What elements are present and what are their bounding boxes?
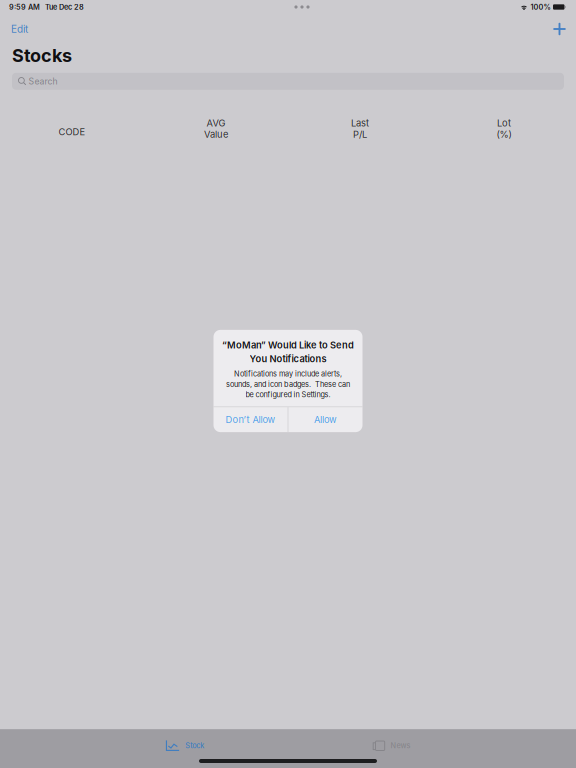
staticText: Notifications may include alerts, [234,369,342,378]
staticText: P/L [353,129,367,140]
button[interactable]: News [331,737,451,754]
staticText: 9:59 AM [9,3,40,11]
button[interactable]: Don’t Allow [213,407,288,432]
staticText: be configured in Settings. [245,390,330,399]
staticText: Value [204,129,228,140]
staticText: Stock [185,741,204,750]
button[interactable]: Search [12,73,564,90]
staticText: “MoMan” Would Like to Send [222,339,354,351]
staticText: News [390,741,410,750]
button[interactable]: Edit [0,19,39,39]
button[interactable]: Add stock [543,19,576,38]
staticText: Don’t Allow [226,414,276,425]
staticText: Stocks [12,44,72,66]
staticText: Last [351,117,369,129]
staticText: Lot [497,117,511,129]
staticText: Allow [314,414,337,425]
staticText: You Notifications [249,353,326,364]
button[interactable]: Allow [288,407,362,432]
staticText: sounds, and icon badges. These can [226,380,350,389]
staticText: AVG [206,117,225,129]
staticText: (%) [496,129,511,140]
staticText: 100% [530,3,550,11]
staticText: CODE [58,126,85,137]
staticText: Tue Dec 28 [45,3,84,11]
staticText: Search [28,76,57,86]
staticText: Edit [11,23,28,35]
button[interactable]: Stock [125,737,245,754]
